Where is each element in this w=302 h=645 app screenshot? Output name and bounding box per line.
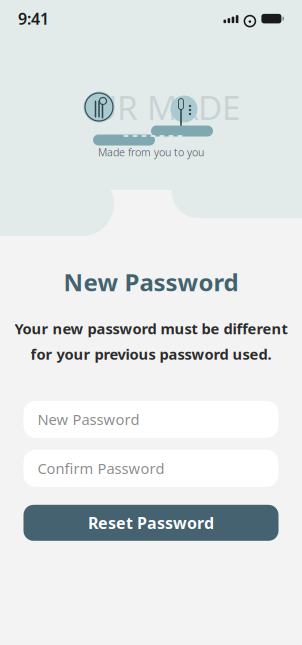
staticText: 9:41 <box>18 8 49 29</box>
staticText: New Password <box>63 266 238 298</box>
button[interactable]: Confirm Password <box>23 450 278 487</box>
staticText: Reset Password <box>88 512 214 533</box>
staticText: UR MADE <box>93 85 241 129</box>
staticText: Confirm Password <box>37 459 164 478</box>
button[interactable]: New Password <box>23 401 278 438</box>
staticText: Your new password must be different <box>14 319 287 338</box>
staticText: for your previous password used. <box>30 344 271 364</box>
staticText: Made from you to you <box>98 145 204 159</box>
button[interactable]: Reset Password <box>23 505 278 541</box>
staticText: New Password <box>37 410 139 429</box>
